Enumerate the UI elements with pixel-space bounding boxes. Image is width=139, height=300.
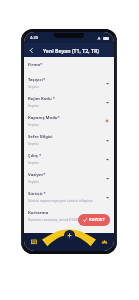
staticText: Çıkış *: [28, 153, 42, 159]
button[interactable]: Rejim Kodu *: [28, 96, 110, 108]
staticText: Seçiniz: [28, 122, 39, 127]
staticText: Kapanış Modu*: [28, 115, 60, 121]
staticText: Taşıyıcı*: [28, 77, 46, 83]
staticText: Sefer Bilgisi: [28, 134, 53, 140]
staticText: 4:20: [30, 35, 38, 40]
button[interactable]: Sefer Bilgisi: [28, 134, 110, 146]
button[interactable]: Firma*: [28, 62, 110, 68]
staticText: Seçiniz: [28, 103, 39, 108]
staticText: Vaziyet*: [28, 172, 46, 178]
button[interactable]: Vaziyet*: [28, 172, 110, 184]
button[interactable]: List: [29, 237, 39, 247]
staticText: Seçiniz: [28, 141, 39, 146]
staticText: Rejim Kodu *: [28, 96, 56, 102]
staticText: Sürücü *: [28, 191, 46, 197]
button[interactable]: Team: [99, 237, 109, 247]
staticText: Kurtarıcı numarası; örnek 07456* şeklind…: [28, 217, 104, 222]
button[interactable]: Back: [26, 45, 36, 55]
staticText: Sürücü seçiniz veya yeni sürücü ekleyini…: [28, 198, 93, 203]
button[interactable]: Kapanış Modu*: [28, 115, 110, 127]
button[interactable]: KAYDET: [78, 214, 110, 226]
button[interactable]: Sürücü *: [28, 191, 110, 203]
staticText: Seçiniz: [28, 84, 39, 89]
button[interactable]: Add: [64, 230, 75, 241]
staticText: Seçiniz: [28, 179, 39, 184]
staticText: Yeni Beyan (T1, T2, TR): [43, 47, 99, 54]
staticText: Firma*: [28, 62, 43, 68]
button[interactable]: Taşıyıcı*: [28, 77, 110, 89]
button[interactable]: Kurtarma: [28, 210, 110, 222]
button[interactable]: Çıkış *: [28, 153, 110, 165]
staticText: Seçiniz: [28, 160, 39, 165]
staticText: KAYDET: [89, 217, 105, 223]
staticText: Kurtarma: [28, 210, 49, 216]
